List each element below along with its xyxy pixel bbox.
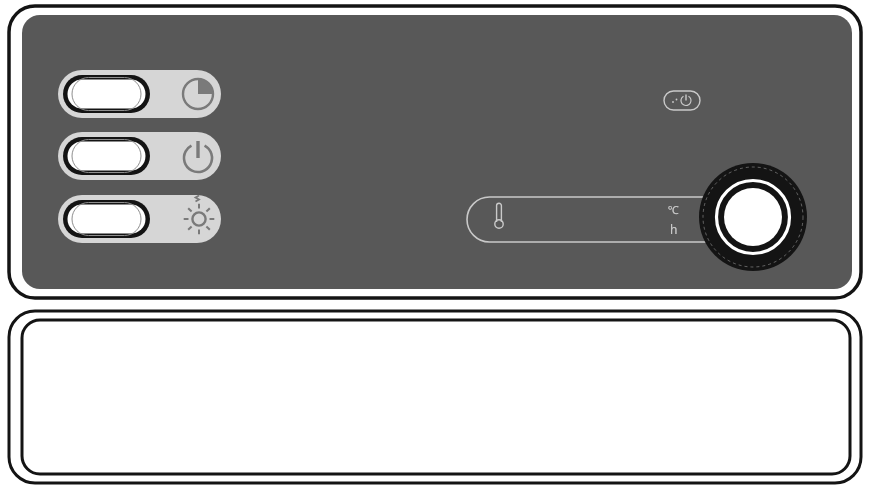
button[interactable]: Standby — [664, 91, 700, 110]
button[interactable]: Power — [58, 132, 221, 180]
button[interactable]: Control knob — [699, 163, 807, 271]
button[interactable]: Timer — [58, 70, 221, 118]
button[interactable]: Light — [58, 195, 221, 243]
